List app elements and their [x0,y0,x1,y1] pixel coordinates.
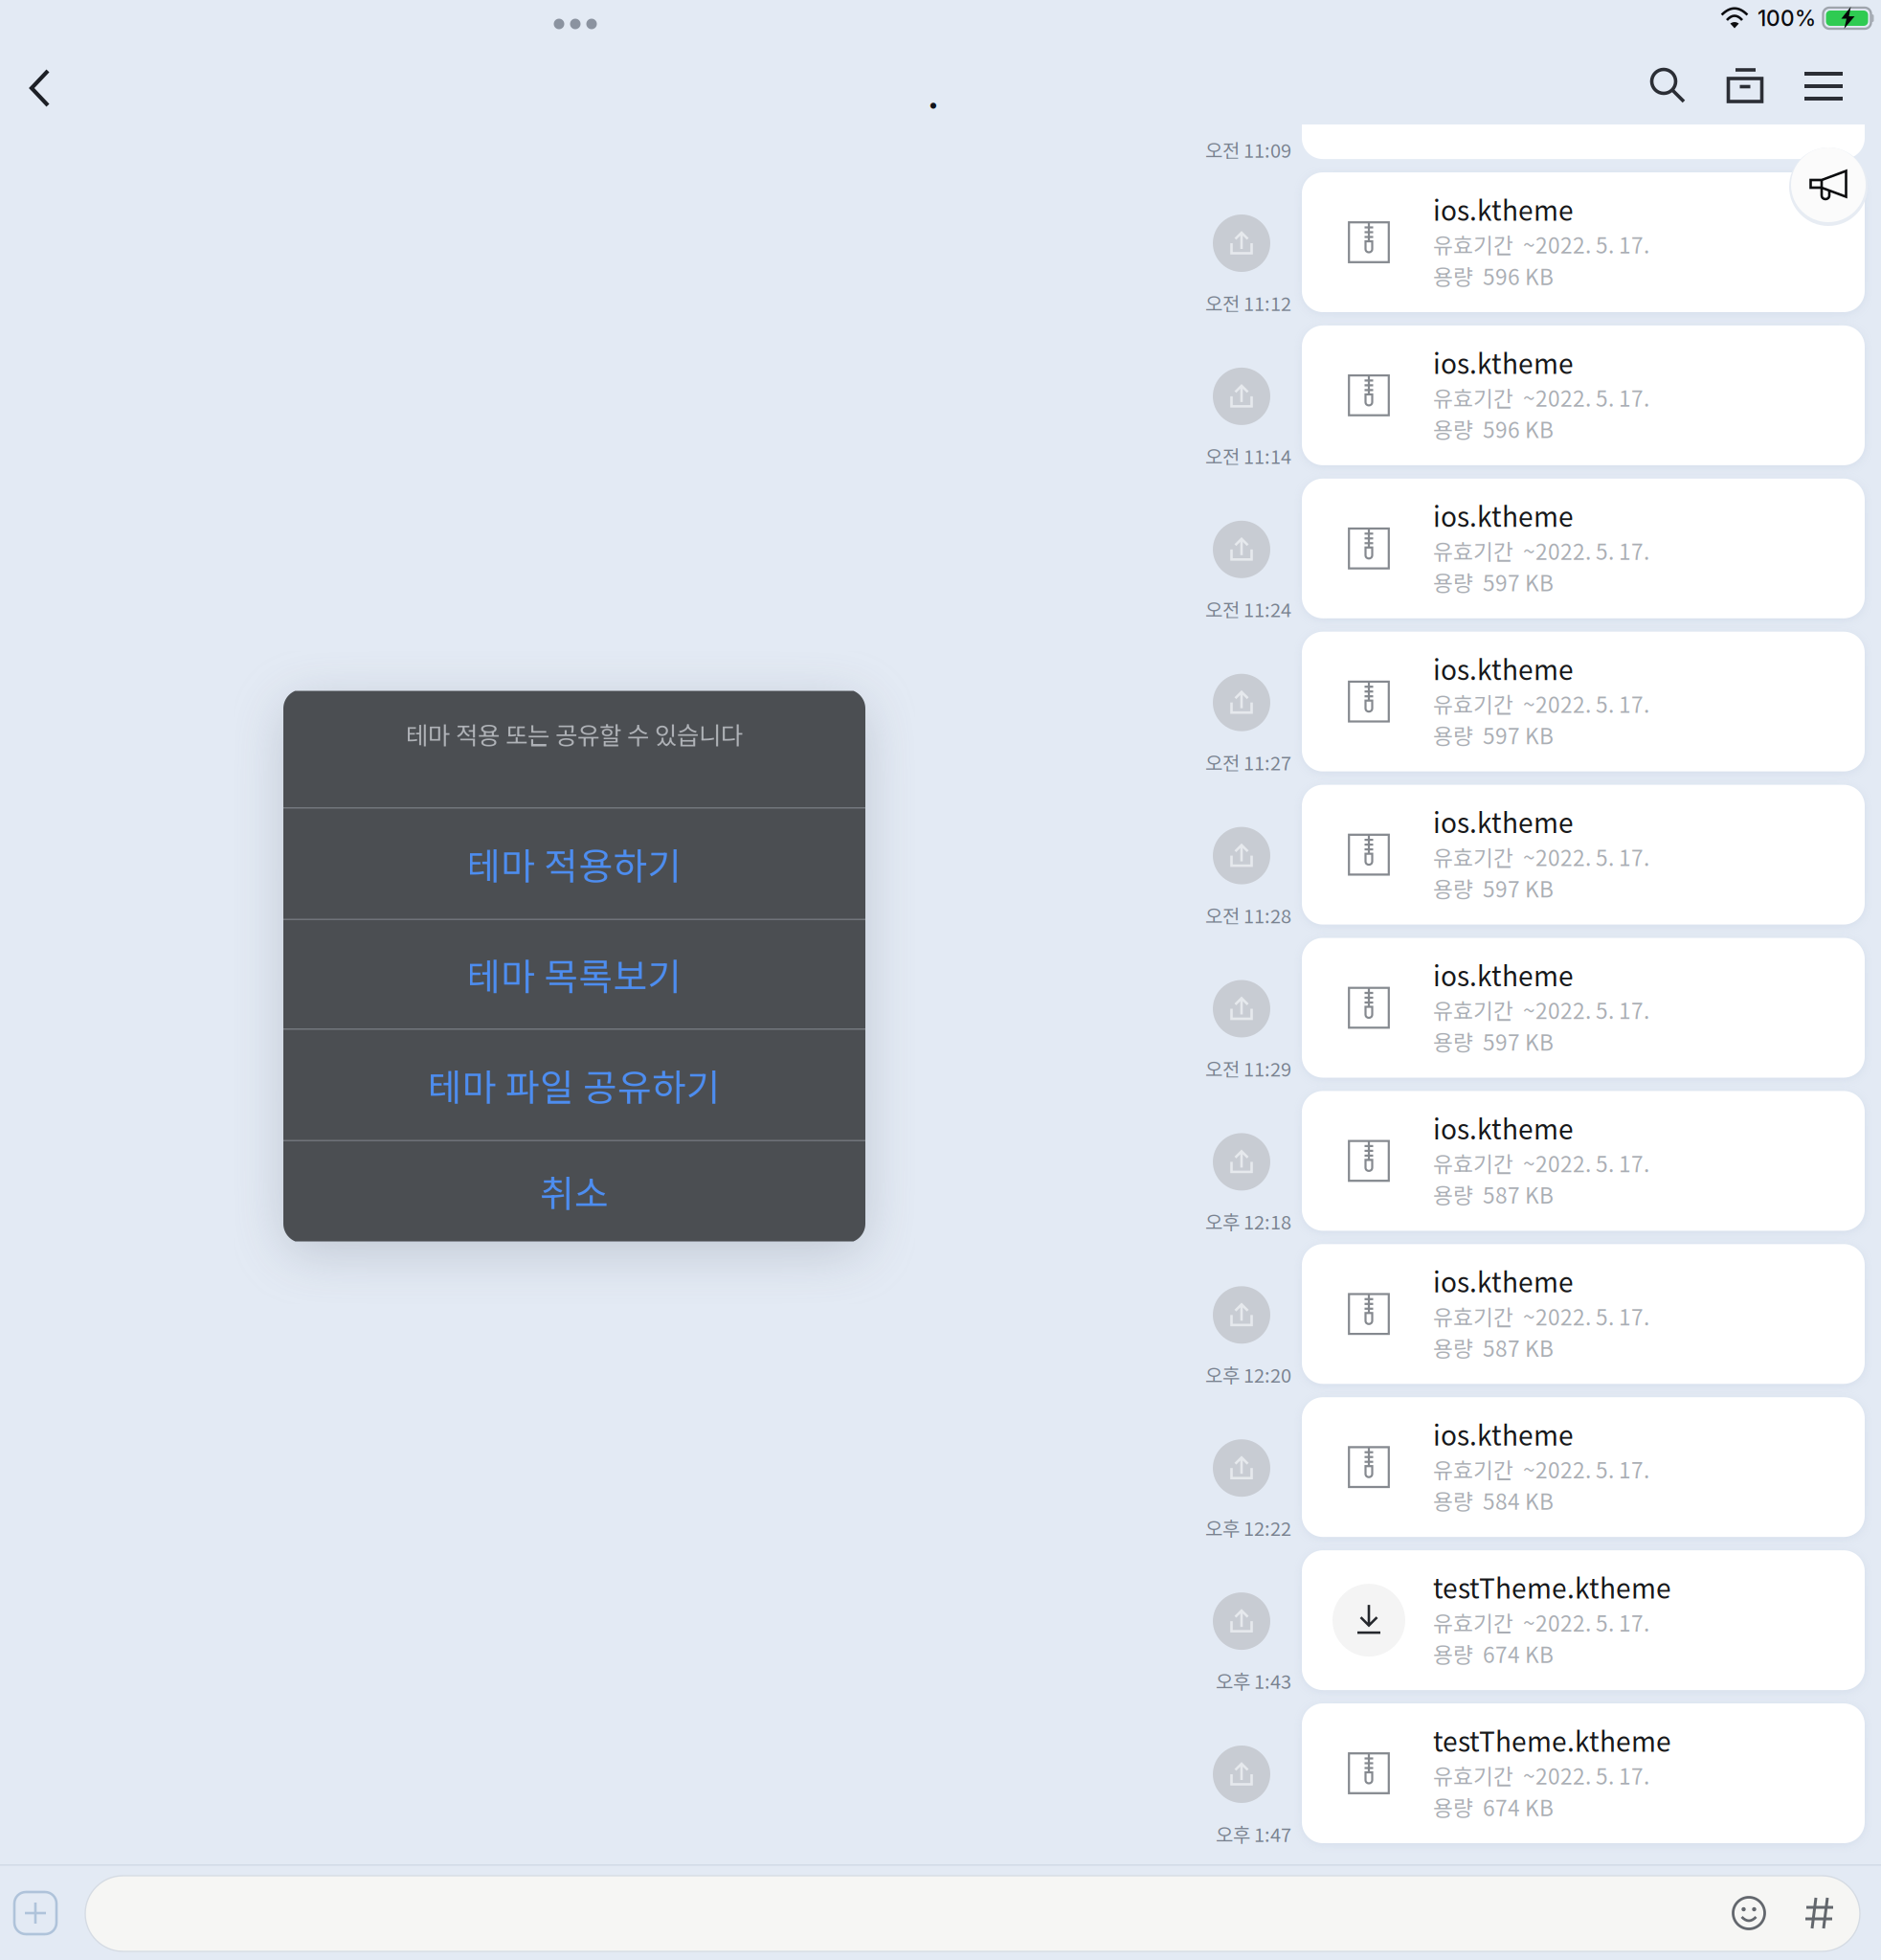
staticText: 오후 12:18 [1205,1207,1291,1235]
button[interactable]: ios.ktheme [1302,632,1865,771]
staticText: ios.ktheme [1433,343,1574,381]
staticText: 용량 584 KB [1433,1485,1554,1516]
staticText: 오전 11:14 [1205,442,1291,470]
button[interactable]: Chat drawer [1722,63,1768,109]
staticText: 용량 674 KB [1433,1791,1554,1822]
staticText: 유효기간 ~2022. 5. 17. [1433,1759,1649,1791]
button[interactable]: ios.ktheme [1302,938,1865,1078]
staticText: 유효기간 ~2022. 5. 17. [1433,841,1649,872]
staticText: 용량 587 KB [1433,1178,1554,1210]
staticText: 용량 597 KB [1433,719,1554,751]
button[interactable]: Menu [1801,63,1847,109]
staticText: 용량 596 KB [1433,413,1554,444]
staticText: 용량 597 KB [1433,566,1554,597]
button[interactable]: Search [1645,63,1691,109]
staticText: ios.ktheme [1433,802,1574,841]
staticText: ios.ktheme [1433,955,1574,994]
staticText: 유효기간 ~2022. 5. 17. [1433,1453,1649,1485]
staticText: 용량 597 KB [1433,872,1554,904]
staticText: 오후 12:20 [1205,1360,1291,1388]
button[interactable]: 테마 목록보기 [283,920,865,1029]
staticText: 유효기간 ~2022. 5. 17. [1433,1606,1649,1638]
staticText: 유효기간 ~2022. 5. 17. [1433,228,1649,260]
staticText: 오후 1:43 [1216,1667,1291,1694]
staticText: 테마 적용하기 [467,837,682,890]
staticText: 오전 11:24 [1205,595,1291,623]
button[interactable]: testTheme.ktheme [1302,1703,1865,1843]
button[interactable]: 테마 적용하기 [283,809,865,918]
staticText: 오전 11:09 [1205,135,1291,163]
staticText: 테마 파일 공유하기 [428,1058,721,1112]
button[interactable]: ios.ktheme [1302,325,1865,465]
staticText: testTheme.ktheme [1433,1568,1671,1606]
staticText: 용량 597 KB [1433,1025,1554,1057]
staticText: 유효기간 ~2022. 5. 17. [1433,535,1649,566]
button[interactable]: Hashtag [1799,1890,1841,1936]
button[interactable]: Back [13,65,67,111]
staticText: 용량 674 KB [1433,1638,1554,1669]
staticText: 테마 목록보기 [467,947,682,1001]
staticText: 테마 적용 또는 공유할 수 있습니다 [406,716,743,752]
staticText: ios.ktheme [1433,190,1574,228]
button[interactable]: Announcements [1791,147,1866,222]
button[interactable]: ios.ktheme [1302,479,1865,618]
staticText: 유효기간 ~2022. 5. 17. [1433,1300,1649,1331]
staticText: . [929,74,938,117]
button[interactable]: Emoji [1726,1890,1772,1936]
button[interactable]: 취소 [283,1141,865,1241]
button[interactable]: ios.ktheme [1302,1397,1865,1537]
staticText: 용량 587 KB [1433,1332,1554,1363]
button[interactable]: ios.ktheme [1302,1091,1865,1231]
button[interactable]: 테마 파일 공유하기 [283,1030,865,1139]
staticText: 유효기간 ~2022. 5. 17. [1433,688,1649,719]
staticText: ios.ktheme [1433,1414,1574,1453]
button[interactable]: Add attachment [13,1891,57,1935]
staticText: ios.ktheme [1433,1108,1574,1147]
button[interactable]: ios.ktheme [1302,1244,1865,1384]
staticText: 오전 11:28 [1205,901,1291,929]
staticText: ios.ktheme [1433,496,1574,535]
button[interactable]: ios.ktheme [1302,172,1865,312]
staticText: 오후 12:22 [1205,1514,1291,1541]
button[interactable]: ios.ktheme [1302,785,1865,925]
staticText: 오전 11:27 [1205,748,1291,776]
staticText: ios.ktheme [1433,649,1574,688]
staticText: 오전 11:29 [1205,1054,1291,1082]
staticText: 오후 1:47 [1216,1820,1291,1847]
staticText: 취소 [540,1164,609,1218]
staticText: 유효기간 ~2022. 5. 17. [1433,1147,1649,1178]
staticText: 유효기간 ~2022. 5. 17. [1433,994,1649,1025]
staticText: 유효기간 ~2022. 5. 17. [1433,381,1649,413]
staticText: 오전 11:12 [1205,289,1291,316]
button[interactable]: testTheme.ktheme [1302,1550,1865,1690]
staticText: ios.ktheme [1433,1261,1574,1300]
staticText: testTheme.ktheme [1433,1721,1671,1759]
staticText: 용량 596 KB [1433,260,1554,291]
staticText: 100% [1758,5,1816,31]
